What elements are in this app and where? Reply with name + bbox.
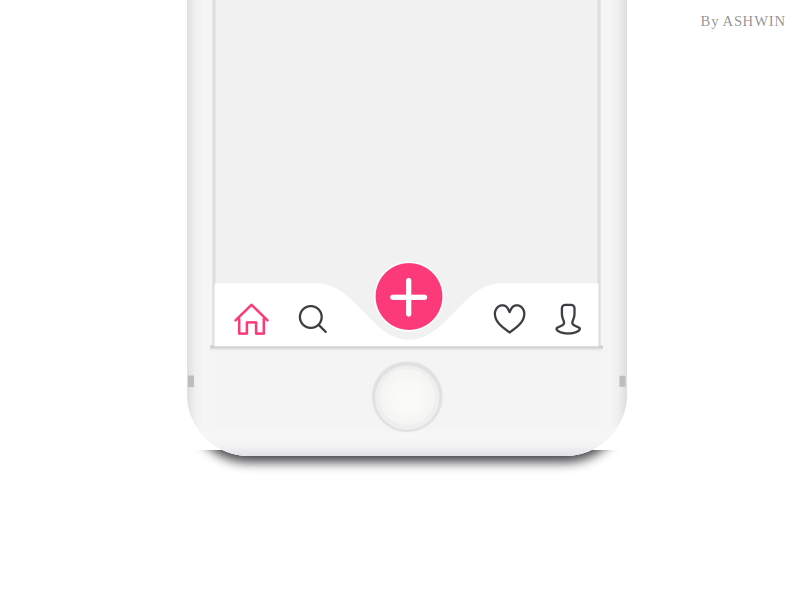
button[interactable]: Home	[0, 0, 800, 600]
staticText: By ASHWIN	[701, 13, 785, 29]
button[interactable]: Profile	[0, 0, 800, 600]
button[interactable]: Create	[0, 0, 800, 600]
button[interactable]: Search	[0, 0, 800, 600]
button[interactable]: Likes	[0, 0, 800, 600]
